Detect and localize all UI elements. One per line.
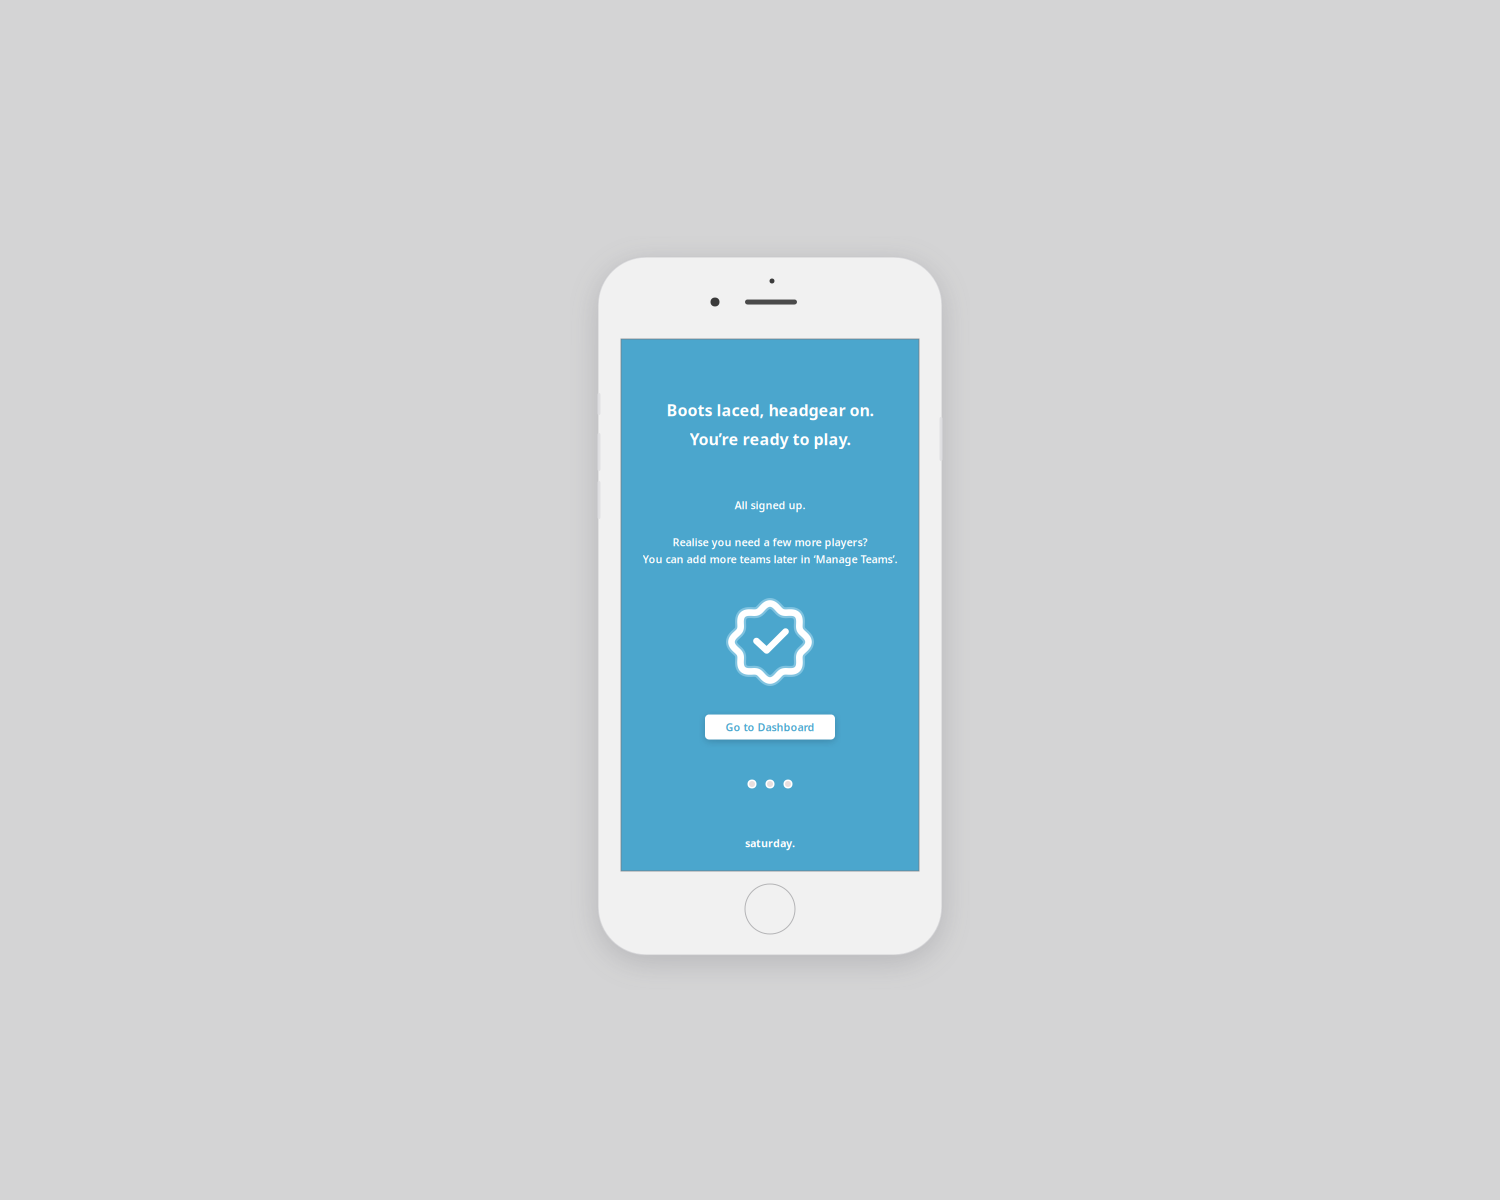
staticText: All signed up. xyxy=(734,498,805,512)
button[interactable]: Go to Dashboard xyxy=(705,714,835,739)
staticText: Go to Dashboard xyxy=(725,720,814,734)
staticText: Realise you need a few more players? xyxy=(672,535,867,549)
staticText: You’re ready to play. xyxy=(689,428,850,450)
staticText: You can add more teams later in ‘Manage … xyxy=(642,552,897,566)
staticText: saturday. xyxy=(745,836,795,850)
staticText: Boots laced, headgear on. xyxy=(666,399,873,421)
